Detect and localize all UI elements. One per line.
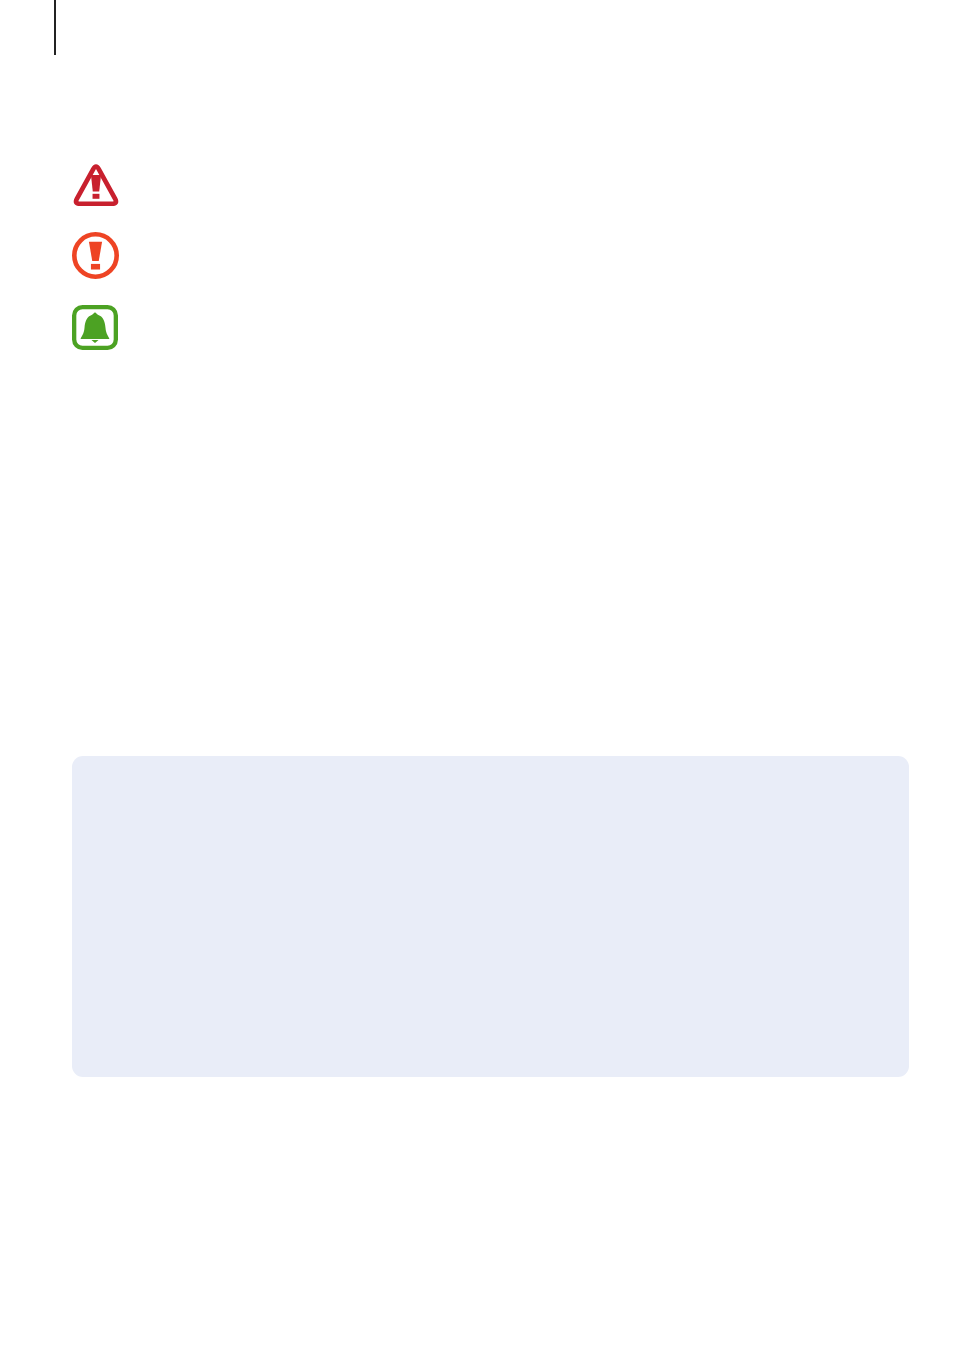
button[interactable]: Note [72, 305, 118, 350]
button[interactable]: Caution [72, 232, 119, 279]
button[interactable]: Warning [72, 162, 120, 206]
